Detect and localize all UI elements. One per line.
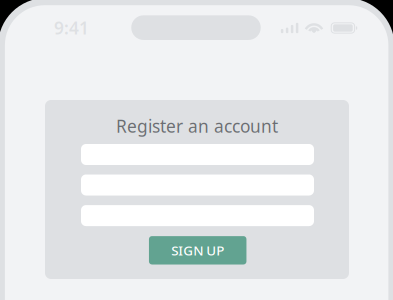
staticText: Register an account — [116, 114, 278, 137]
staticText: 9:41 — [54, 16, 89, 39]
staticText: SIGN UP — [171, 241, 224, 259]
button[interactable]: SIGN UP — [149, 236, 246, 264]
button[interactable]: Email — [81, 174, 314, 195]
